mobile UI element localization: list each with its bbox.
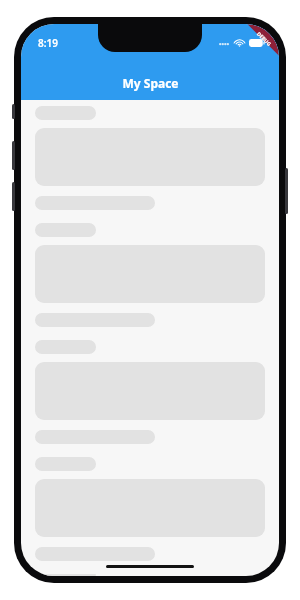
staticText: 8:19 <box>38 36 58 50</box>
staticText: My Space <box>122 75 179 91</box>
other: Volume up <box>12 141 15 170</box>
button[interactable] <box>21 451 279 568</box>
other: Ring silent switch <box>12 104 15 119</box>
button[interactable] <box>21 334 279 451</box>
button[interactable] <box>21 100 279 217</box>
button[interactable] <box>21 568 279 576</box>
staticText: DEBUG <box>255 31 273 48</box>
button[interactable] <box>21 217 279 334</box>
other: Power <box>285 168 288 214</box>
other: Volume down <box>12 182 15 211</box>
